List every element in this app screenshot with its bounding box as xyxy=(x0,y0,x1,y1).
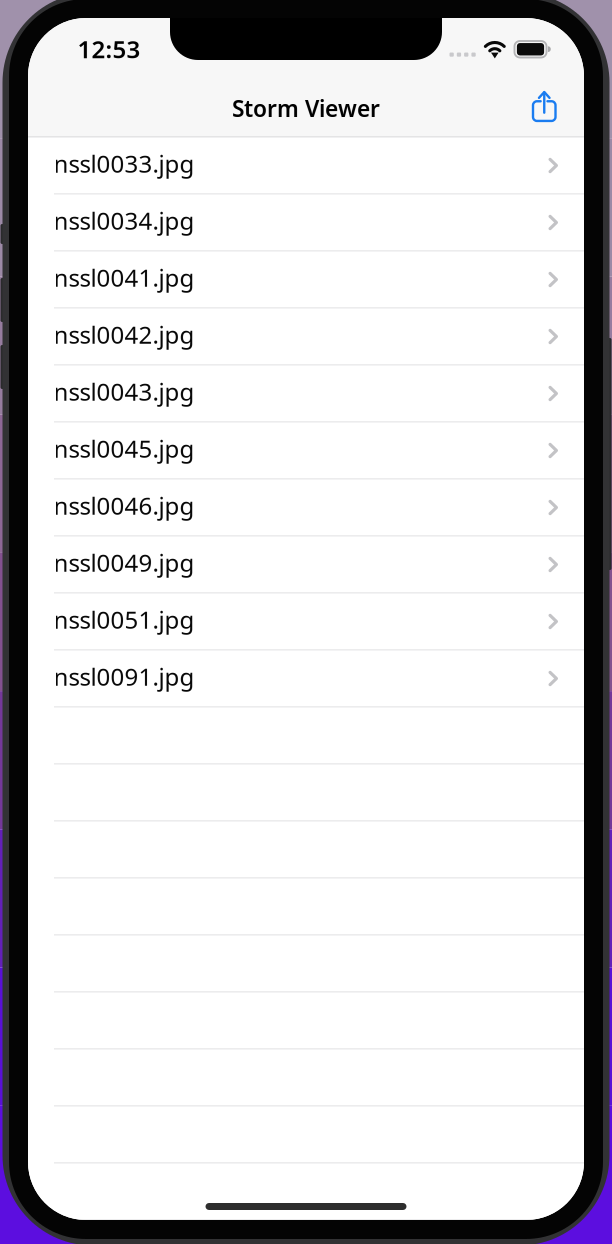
button[interactable]: Share xyxy=(512,80,570,136)
button[interactable]: nssl0091.jpg xyxy=(28,650,584,707)
staticText: nssl0034.jpg xyxy=(53,205,194,236)
staticText: nssl0091.jpg xyxy=(53,661,194,692)
staticText: Storm Viewer xyxy=(232,93,380,123)
staticText: nssl0046.jpg xyxy=(53,490,194,521)
button[interactable]: nssl0042.jpg xyxy=(28,308,584,365)
staticText: nssl0049.jpg xyxy=(53,547,194,578)
button[interactable]: nssl0046.jpg xyxy=(28,479,584,536)
staticText: nssl0033.jpg xyxy=(53,148,194,179)
button[interactable]: nssl0041.jpg xyxy=(28,251,584,308)
staticText: nssl0041.jpg xyxy=(53,262,194,293)
button[interactable]: nssl0034.jpg xyxy=(28,194,584,251)
button[interactable]: nssl0051.jpg xyxy=(28,593,584,650)
staticText: nssl0051.jpg xyxy=(53,604,194,635)
staticText: nssl0043.jpg xyxy=(53,376,194,407)
button[interactable]: nssl0043.jpg xyxy=(28,365,584,422)
button[interactable]: nssl0049.jpg xyxy=(28,536,584,593)
button[interactable]: nssl0045.jpg xyxy=(28,422,584,479)
staticText: 12:53 xyxy=(77,33,140,65)
staticText: nssl0045.jpg xyxy=(53,433,194,464)
button[interactable]: nssl0033.jpg xyxy=(28,137,584,194)
staticText: nssl0042.jpg xyxy=(53,319,194,350)
